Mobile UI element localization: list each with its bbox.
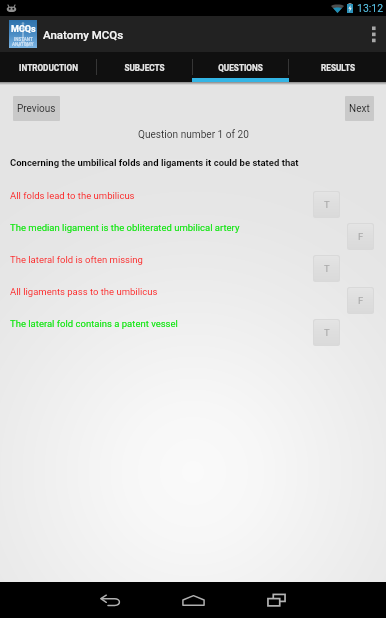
staticText: Next [349, 103, 370, 115]
button[interactable]: Next [345, 96, 374, 121]
staticText: RESULTS [321, 63, 355, 73]
staticText: QUESTIONS [218, 63, 263, 73]
button[interactable]: F [348, 224, 373, 249]
staticText: Concerning the umbilical folds and ligam… [10, 157, 299, 168]
staticText: T [324, 327, 330, 338]
staticText: The lateral fold is often missing [10, 254, 143, 265]
button[interactable]: RESULTS [289, 52, 386, 82]
staticText: ANATOMY [12, 42, 34, 47]
staticText: F [358, 231, 364, 242]
staticText: 13:12 [357, 2, 384, 14]
button[interactable]: Recent apps [235, 582, 318, 618]
button[interactable]: F [348, 288, 373, 313]
staticText: The median ligament is the obliterated u… [10, 222, 240, 233]
button[interactable]: T [314, 192, 339, 217]
button[interactable]: QUESTIONS [192, 52, 289, 82]
staticText: Question number 1 of 20 [138, 129, 249, 141]
button[interactable]: Previous [13, 96, 60, 121]
button[interactable]: T [314, 256, 339, 281]
staticText: The lateral fold contains a patent vesse… [10, 318, 178, 329]
staticText: All folds lead to the umbilicus [10, 190, 135, 201]
staticText: INTRODUCTION [19, 63, 78, 73]
staticText: Anatomy MCQs [43, 28, 124, 41]
staticText: All ligaments pass to the umbilicus [10, 286, 158, 297]
button[interactable]: INTRODUCTION [0, 52, 96, 82]
staticText: F [358, 295, 364, 306]
staticText: Previous [17, 103, 56, 115]
staticText: T [324, 263, 330, 274]
button[interactable]: More options [358, 16, 386, 52]
staticText: SUBJECTS [124, 63, 165, 73]
button[interactable]: Back [69, 582, 152, 618]
button[interactable]: Home [152, 582, 235, 618]
button[interactable]: SUBJECTS [96, 52, 192, 82]
staticText: T [324, 199, 330, 210]
button[interactable]: T [314, 320, 339, 345]
staticText: MCQs [11, 24, 36, 35]
staticText: INSTANT [14, 37, 33, 42]
